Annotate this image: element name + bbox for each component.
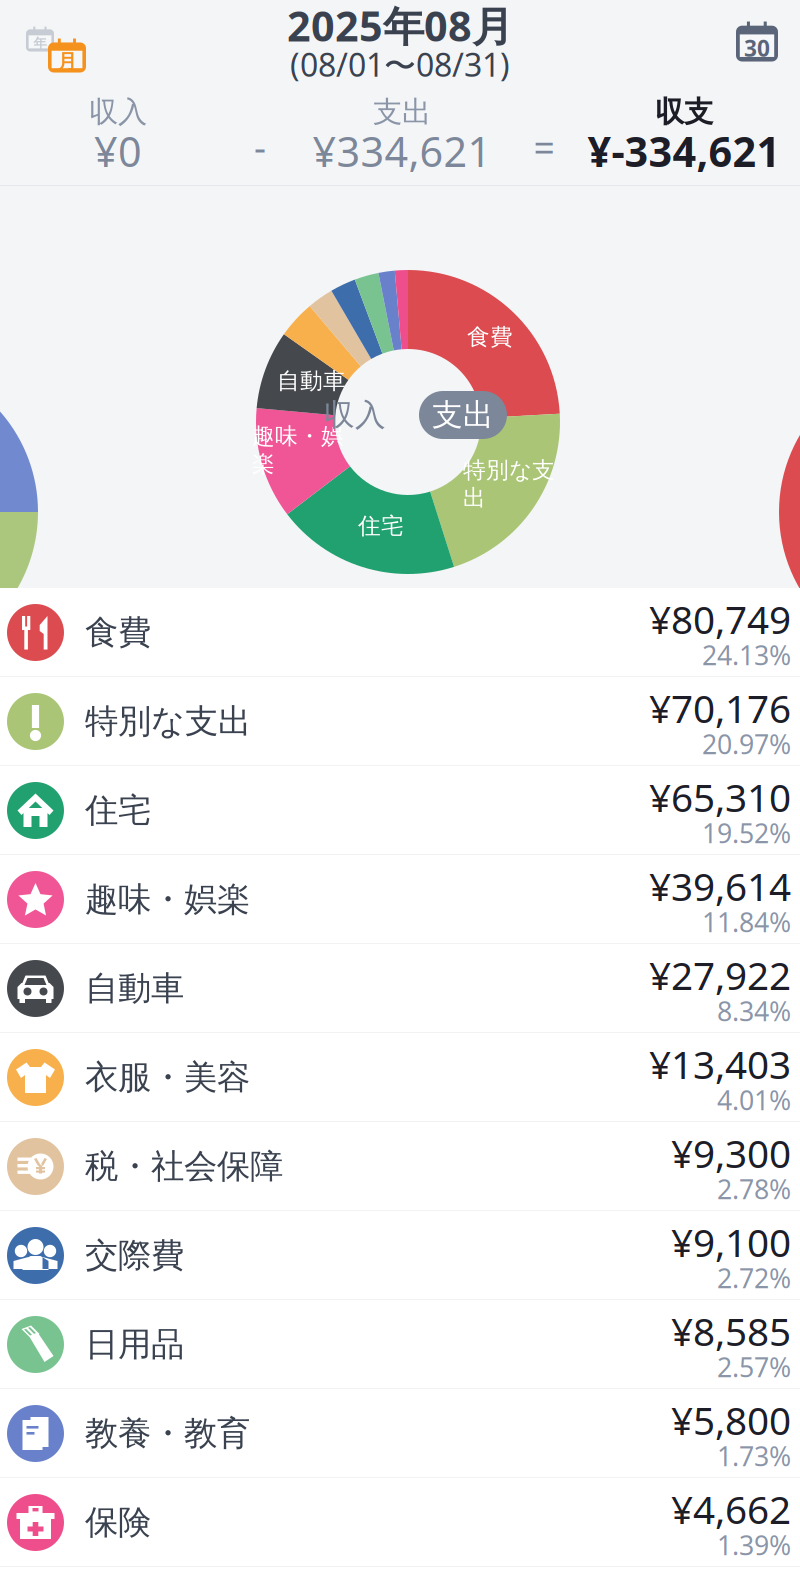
staticText: 税・社会保障 bbox=[85, 1146, 283, 1187]
staticText: - bbox=[254, 122, 266, 172]
button[interactable]: 自動車 bbox=[0, 944, 800, 1033]
button[interactable]: 日用品 bbox=[0, 1300, 800, 1389]
staticText: 自動車 bbox=[85, 968, 184, 1009]
button[interactable]: 特別な支出 bbox=[0, 677, 800, 766]
staticText: 2.78% bbox=[717, 1171, 791, 1207]
staticText: 収支 bbox=[655, 94, 713, 130]
button[interactable]: 税・社会保障 bbox=[0, 1122, 800, 1211]
staticText: ¥9,300 bbox=[671, 1127, 791, 1179]
staticText: 2.57% bbox=[717, 1349, 791, 1385]
staticText: 交際費 bbox=[85, 1235, 184, 1276]
staticText: ¥39,614 bbox=[649, 860, 791, 912]
staticText: 食費 bbox=[85, 612, 151, 653]
staticText: 食費 bbox=[467, 323, 513, 351]
staticText: 1.39% bbox=[717, 1527, 791, 1563]
staticText: 支出 bbox=[373, 94, 431, 130]
staticText: ¥9,100 bbox=[671, 1216, 791, 1268]
button[interactable]: 教養・教育 bbox=[0, 1389, 800, 1478]
staticText: 24.13% bbox=[702, 637, 791, 673]
staticText: ¥80,749 bbox=[649, 593, 791, 645]
staticText: 趣味・娯楽 bbox=[85, 879, 250, 920]
staticText: 衣服・美容 bbox=[85, 1057, 250, 1098]
staticText: 特別な支出 bbox=[85, 701, 251, 742]
staticText: ¥27,922 bbox=[649, 949, 791, 1001]
staticText: 1.73% bbox=[717, 1438, 791, 1474]
button[interactable]: 趣味・娯楽 bbox=[0, 855, 800, 944]
staticText: 自動車 bbox=[277, 367, 346, 395]
staticText: 日用品 bbox=[85, 1324, 184, 1365]
staticText: 住宅 bbox=[358, 512, 404, 540]
staticText: ¥5,800 bbox=[671, 1394, 791, 1446]
staticText: ¥70,176 bbox=[649, 682, 791, 734]
staticText: 住宅 bbox=[85, 790, 151, 831]
staticText: 19.52% bbox=[702, 815, 791, 851]
staticText: 月 bbox=[57, 49, 77, 74]
button[interactable]: 住宅 bbox=[0, 766, 800, 855]
staticText: (08/01〜08/31) bbox=[290, 43, 510, 86]
staticText: ¥0 bbox=[94, 124, 142, 178]
staticText: 2025年08月 bbox=[287, 0, 513, 53]
button[interactable]: 収入 bbox=[311, 391, 399, 439]
button[interactable]: 保険 bbox=[0, 1478, 800, 1567]
staticText: 30 bbox=[744, 33, 770, 63]
button[interactable]: 食費 bbox=[0, 588, 800, 677]
staticText: 支出 bbox=[432, 396, 494, 434]
staticText: 特別な支出 bbox=[463, 456, 555, 512]
staticText: ¥-334,621 bbox=[587, 124, 780, 178]
button[interactable]: 衣服・美容 bbox=[0, 1033, 800, 1122]
staticText: ¥4,662 bbox=[671, 1483, 791, 1535]
staticText: 趣味・娯楽 bbox=[252, 422, 344, 478]
staticText: ¥65,310 bbox=[649, 771, 791, 823]
button[interactable]: 年月切替 bbox=[0, 10, 100, 72]
staticText: 保険 bbox=[85, 1502, 151, 1543]
staticText: 4.01% bbox=[717, 1082, 791, 1118]
staticText: 収入 bbox=[89, 94, 147, 130]
staticText: 20.97% bbox=[702, 726, 791, 762]
button[interactable]: 支出 bbox=[419, 391, 507, 439]
staticText: = bbox=[533, 122, 554, 172]
staticText: 教養・教育 bbox=[85, 1413, 250, 1454]
button[interactable]: カレンダー bbox=[736, 21, 800, 61]
staticText: 8.34% bbox=[717, 993, 791, 1029]
staticText: 11.84% bbox=[702, 904, 791, 940]
staticText: 収入 bbox=[324, 396, 386, 434]
staticText: ¥13,403 bbox=[649, 1038, 791, 1090]
staticText: 2.72% bbox=[717, 1260, 791, 1296]
button[interactable]: 交際費 bbox=[0, 1211, 800, 1300]
staticText: 年 bbox=[33, 35, 46, 52]
staticText: ¥8,585 bbox=[671, 1305, 791, 1357]
staticText: ¥334,621 bbox=[312, 124, 491, 178]
